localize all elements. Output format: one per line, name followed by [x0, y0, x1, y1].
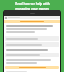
staticText: managing your money: [15, 7, 49, 11]
button[interactable]: [5, 53, 59, 57]
button[interactable]: [5, 36, 59, 41]
staticText: Read how we help with: [15, 2, 50, 6]
button[interactable]: [4, 20, 60, 23]
button[interactable]: Menu: [4, 16, 60, 19]
button[interactable]: [5, 66, 59, 69]
button[interactable]: [5, 42, 59, 47]
